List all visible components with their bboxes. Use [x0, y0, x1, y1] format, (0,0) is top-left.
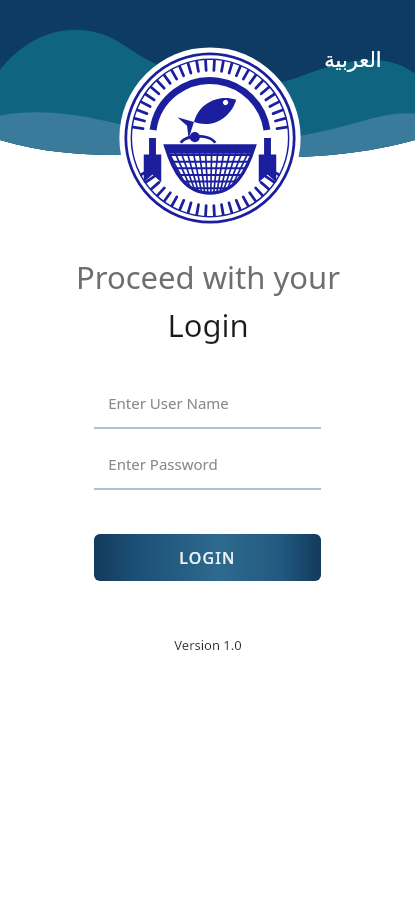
- staticText: العربية: [324, 48, 382, 72]
- staticText: LOGIN: [179, 547, 236, 569]
- button[interactable]: LOGIN: [94, 534, 321, 581]
- staticText: Version 1.0: [174, 636, 242, 654]
- staticText: Enter User Name: [108, 393, 229, 413]
- staticText: Login: [167, 304, 249, 346]
- staticText: Enter Password: [108, 454, 218, 474]
- button[interactable]: Enter Password: [94, 449, 321, 490]
- button[interactable]: العربية: [300, 42, 400, 78]
- staticText: Proceed with your: [76, 256, 340, 298]
- button[interactable]: Enter User Name: [94, 388, 321, 429]
